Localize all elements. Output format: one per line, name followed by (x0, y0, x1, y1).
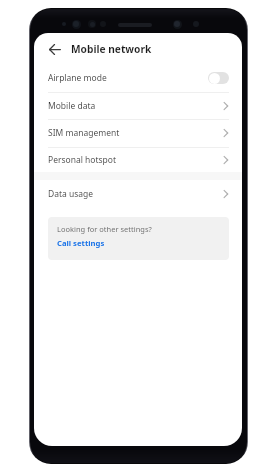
button[interactable]: Airplane mode toggle (208, 72, 229, 84)
staticText: Airplane mode (48, 72, 107, 84)
staticText: Data usage (48, 188, 94, 200)
button[interactable]: Personal hotspot (34, 147, 242, 173)
staticText: SIM management (48, 127, 120, 139)
button[interactable]: Mobile data (34, 92, 242, 119)
button[interactable]: Airplane mode (34, 64, 242, 91)
staticText: Mobile data (48, 100, 96, 112)
staticText: Looking for other settings? (57, 224, 152, 234)
button[interactable]: Back (42, 39, 67, 59)
button[interactable]: Data usage (34, 180, 242, 207)
button[interactable]: Call settings (57, 238, 105, 248)
button[interactable]: SIM management (34, 119, 242, 146)
staticText: Personal hotspot (48, 154, 117, 166)
staticText: Mobile network (71, 42, 152, 56)
